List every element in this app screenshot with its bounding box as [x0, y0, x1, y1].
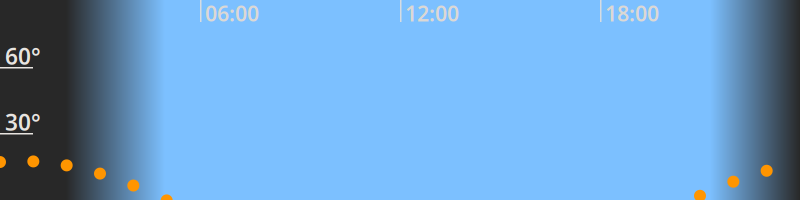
staticText: 06:00 [205, 0, 259, 27]
staticText: 30° [5, 107, 41, 137]
staticText: 60° [5, 41, 41, 71]
staticText: 18:00 [605, 0, 659, 27]
staticText: 12:00 [405, 0, 459, 27]
